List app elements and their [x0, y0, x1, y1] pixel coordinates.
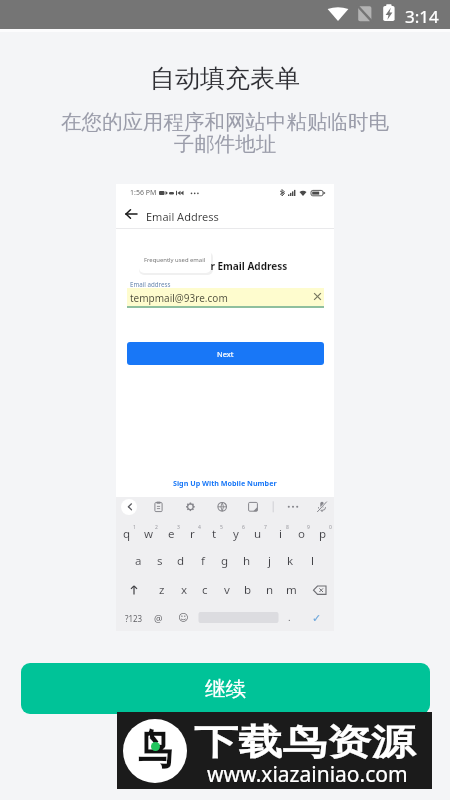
staticText: 鸟 — [138, 724, 172, 777]
button[interactable]: j — [258, 552, 280, 570]
staticText: g — [221, 553, 229, 569]
staticText: 5 — [220, 524, 223, 531]
staticText: u — [254, 526, 262, 542]
staticText: t — [212, 526, 217, 542]
button[interactable]: Space — [199, 612, 279, 624]
staticText: j — [268, 553, 271, 569]
staticText: 3:14 — [405, 5, 439, 28]
button[interactable]: p — [312, 525, 334, 543]
button[interactable]: x — [173, 581, 195, 599]
staticText: l — [311, 553, 314, 569]
staticText: 9 — [307, 524, 310, 531]
button[interactable]: z — [151, 581, 173, 599]
staticText: p — [319, 526, 327, 542]
button[interactable]: Stickers — [244, 498, 262, 516]
staticText: 子邮件地址 — [0, 131, 450, 157]
staticText: Enter Email Address — [188, 259, 288, 273]
button[interactable]: e — [160, 525, 182, 543]
button[interactable]: Voice input off — [313, 498, 331, 516]
staticText: x — [181, 582, 188, 598]
staticText: 3 — [177, 524, 180, 531]
button[interactable]: o — [290, 525, 312, 543]
staticText: r — [190, 526, 195, 542]
staticText: m — [286, 582, 297, 598]
staticText: www.xiazainiao.com — [207, 760, 408, 789]
button[interactable]: Navigate up — [118, 202, 144, 226]
button[interactable]: Clear text — [310, 289, 325, 304]
button[interactable]: b — [237, 581, 259, 599]
button[interactable]: Sign Up With Mobile Number — [116, 478, 334, 488]
button[interactable]: Clipboard — [150, 498, 168, 516]
button[interactable]: g — [214, 552, 236, 570]
staticText: 2 — [155, 524, 158, 531]
button[interactable]: q — [116, 525, 138, 543]
staticText: s — [157, 553, 163, 569]
staticText: e — [168, 526, 175, 542]
button[interactable]: . — [278, 608, 300, 626]
button[interactable]: c — [194, 581, 216, 599]
staticText: 1 — [133, 524, 136, 531]
button[interactable]: y — [225, 525, 247, 543]
staticText: k — [287, 553, 294, 569]
button[interactable]: f — [192, 552, 214, 570]
button[interactable]: s — [149, 552, 171, 570]
staticText: 自动填充表单 — [0, 63, 450, 94]
button[interactable]: d — [170, 552, 192, 570]
button[interactable]: ✓ — [306, 609, 328, 627]
button[interactable]: Delete — [310, 581, 330, 599]
staticText: 0 — [329, 524, 332, 531]
staticText: ☺ — [178, 612, 189, 624]
button[interactable]: Keyboard settings — [181, 498, 199, 516]
button[interactable]: a — [127, 552, 149, 570]
button[interactable]: @ — [147, 609, 169, 627]
staticText: ?123 — [125, 613, 143, 624]
staticText: 4 — [198, 524, 201, 531]
button[interactable]: k — [279, 552, 301, 570]
staticText: c — [202, 582, 208, 598]
staticText: h — [243, 553, 251, 569]
staticText: 继续 — [205, 676, 246, 702]
staticText: f — [201, 553, 205, 569]
button[interactable]: v — [216, 581, 238, 599]
button[interactable] — [127, 288, 324, 306]
button[interactable]: m — [280, 581, 302, 599]
button[interactable]: ☺ — [172, 609, 194, 627]
staticText: n — [266, 582, 274, 598]
button[interactable]: Next — [127, 342, 324, 365]
button[interactable]: r — [181, 525, 203, 543]
staticText: Next — [217, 349, 234, 359]
button[interactable]: u — [247, 525, 269, 543]
staticText: 1:56 PM — [130, 188, 157, 198]
button[interactable]: 继续 — [21, 663, 430, 714]
staticText: tempmail@93re.com — [130, 291, 228, 305]
staticText: 下载鸟资源 — [194, 720, 415, 764]
staticText: v — [224, 582, 230, 598]
button[interactable]: Change language — [213, 498, 231, 516]
staticText: q — [123, 526, 131, 542]
button[interactable]: Frequently used email — [139, 249, 211, 273]
button[interactable]: w — [138, 525, 160, 543]
staticText: 7 — [264, 524, 267, 531]
button[interactable]: t — [203, 525, 225, 543]
button[interactable]: n — [259, 581, 281, 599]
button[interactable]: Back — [121, 499, 137, 515]
button[interactable]: i — [269, 525, 291, 543]
staticText: 在您的应用程序和网站中粘贴临时电 — [0, 109, 450, 135]
button[interactable]: h — [236, 552, 258, 570]
staticText: o — [298, 526, 305, 542]
staticText: 6 — [242, 524, 245, 531]
staticText: z — [159, 582, 165, 598]
button[interactable]: More options — [282, 498, 300, 516]
staticText: d — [177, 553, 185, 569]
staticText: ✓ — [312, 612, 322, 625]
button[interactable]: ?123 — [123, 609, 145, 627]
button[interactable]: l — [301, 552, 323, 570]
staticText: Sign Up With Mobile Number — [173, 478, 277, 488]
staticText: @ — [154, 612, 163, 625]
button[interactable]: Shift — [124, 581, 144, 599]
staticText: Email Address — [146, 209, 219, 224]
staticText: y — [233, 526, 239, 542]
staticText: 8 — [286, 524, 289, 531]
staticText: Email address — [130, 280, 171, 288]
staticText: Frequently used email — [144, 256, 206, 264]
